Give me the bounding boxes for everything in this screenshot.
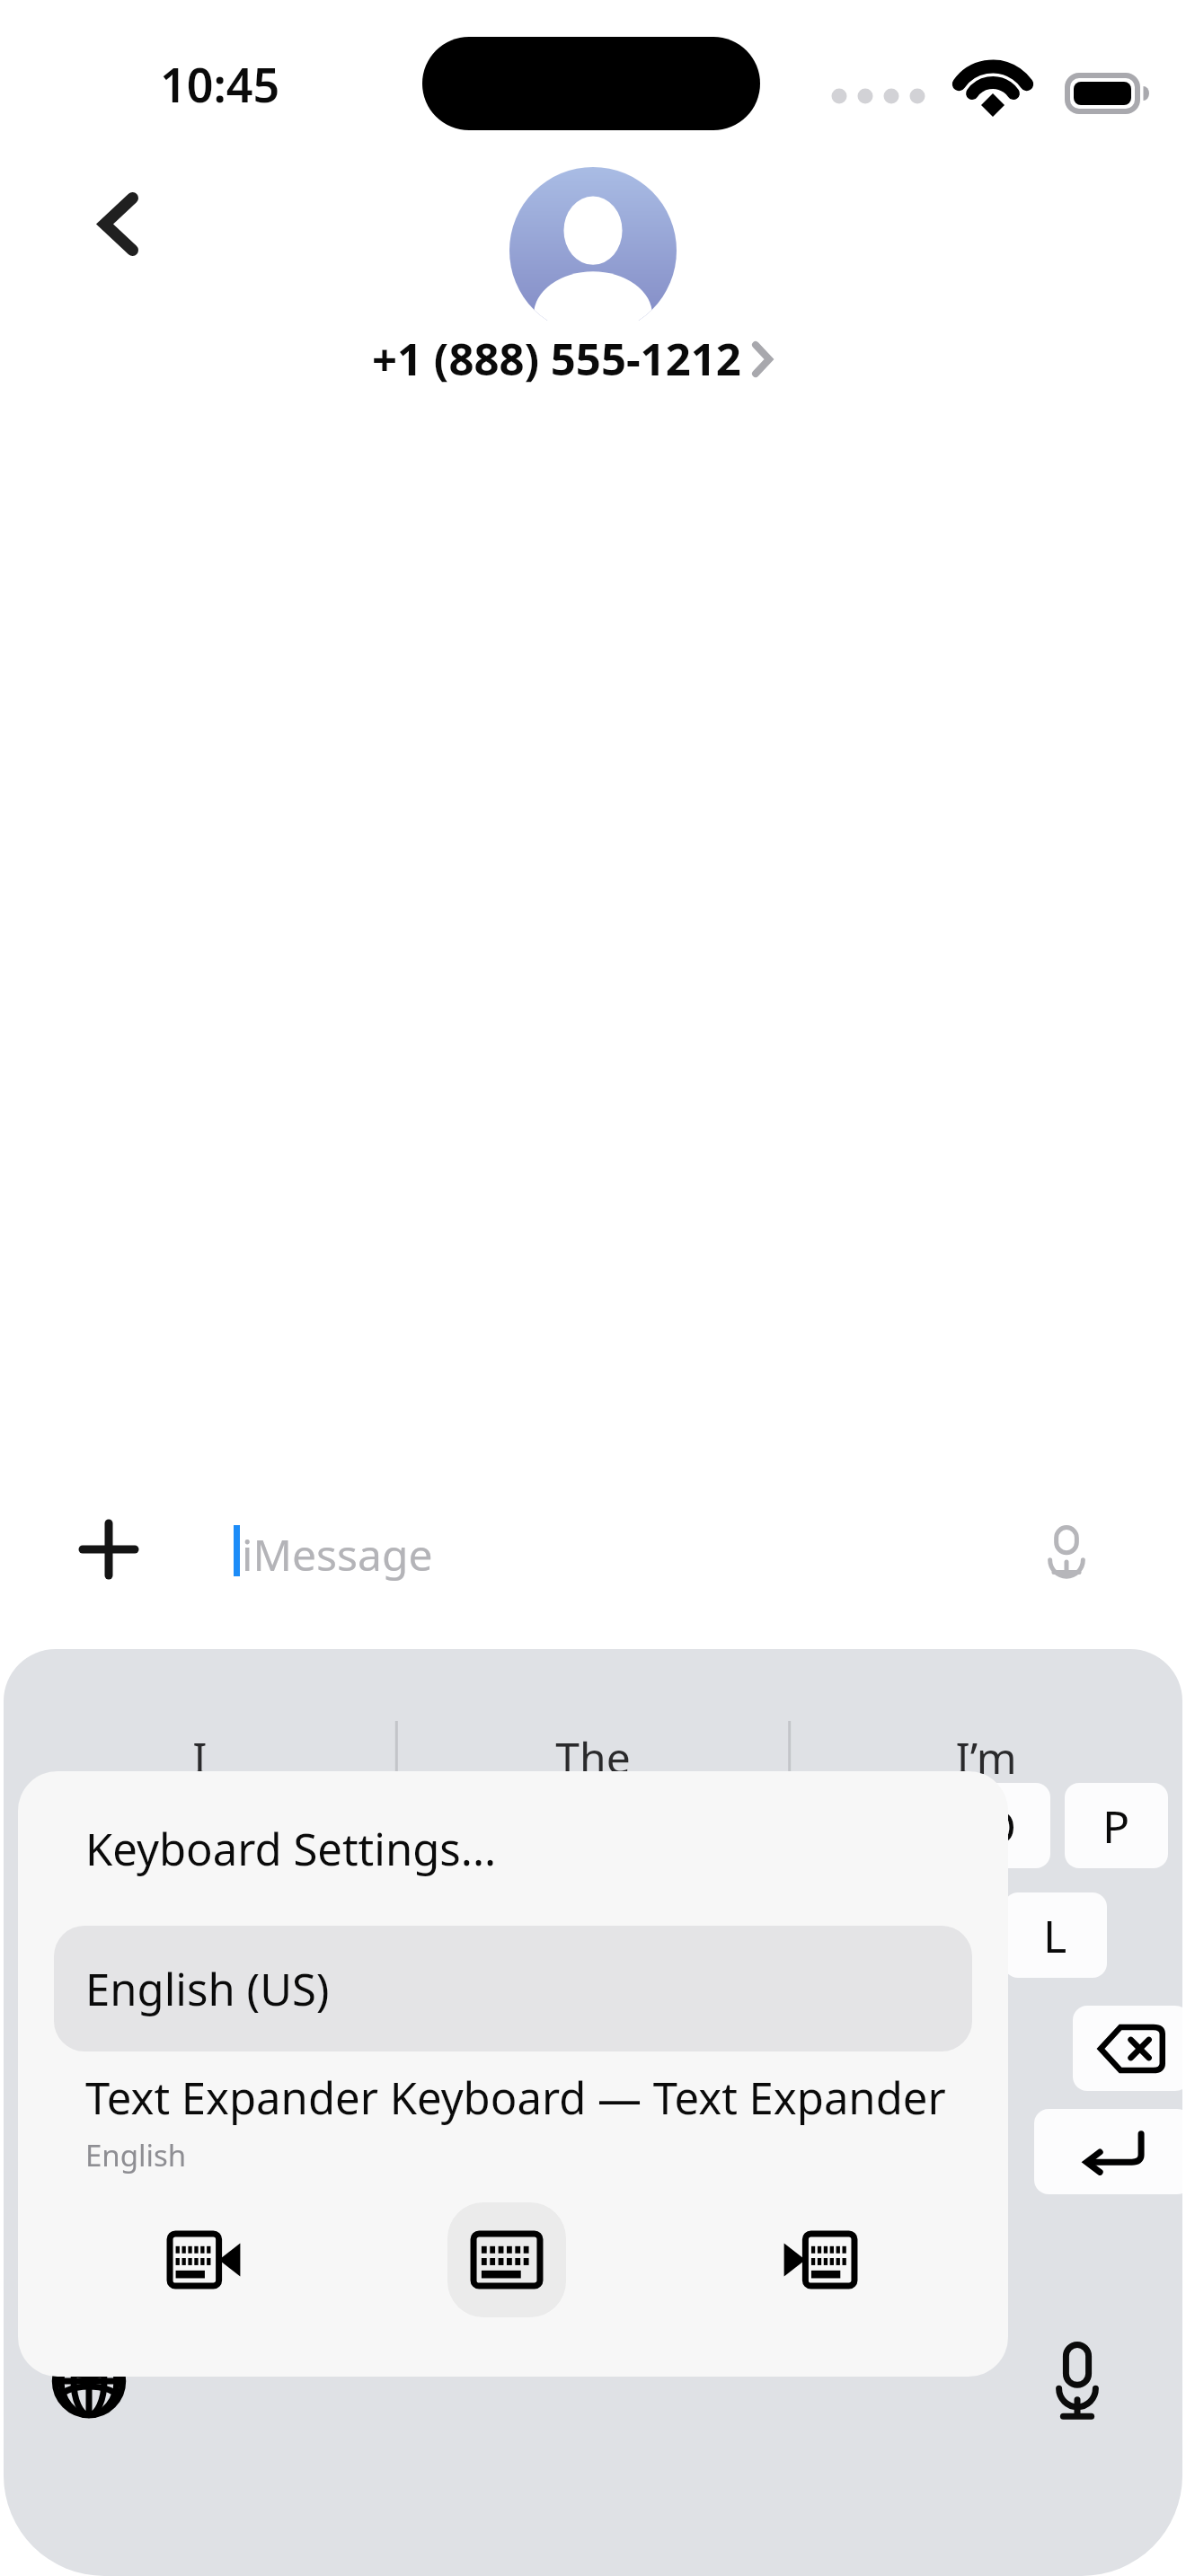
button[interactable]: Voice message: [1042, 1526, 1091, 1575]
button[interactable]: O: [947, 1783, 1050, 1868]
button[interactable]: P: [1065, 1783, 1168, 1868]
button[interactable]: I: [4, 1703, 396, 1811]
button[interactable]: Contact avatar: [509, 167, 677, 334]
staticText: P: [1102, 1795, 1130, 1857]
button[interactable]: +1 (888) 555-1212: [340, 321, 804, 396]
staticText: The: [555, 1728, 631, 1786]
button[interactable]: Back: [56, 164, 175, 284]
staticText: Text Expander Keyboard — Text Expander: [85, 2068, 946, 2128]
button[interactable]: Return: [1034, 2109, 1182, 2194]
button[interactable]: I’m: [790, 1703, 1182, 1811]
button[interactable]: Backspace: [1073, 2006, 1182, 2091]
staticText: iMessage: [242, 1525, 433, 1584]
button[interactable]: Text Expander Keyboard — Text Expander: [85, 2068, 1008, 2175]
button[interactable]: English (US): [54, 1926, 972, 2051]
button[interactable]: Dictation: [1028, 2332, 1127, 2430]
button[interactable]: Dock keyboard left: [144, 2202, 262, 2317]
button[interactable]: iMessage: [205, 1495, 1125, 1605]
staticText: English: [85, 2135, 187, 2175]
staticText: 10:45: [160, 52, 280, 116]
staticText: +1 (888) 555-1212: [372, 329, 741, 389]
button[interactable]: L: [1004, 1892, 1107, 1978]
staticText: I: [192, 1728, 208, 1786]
staticText: English (US): [85, 1959, 330, 2019]
button[interactable]: Keyboard Settings...: [18, 1791, 1008, 1906]
staticText: Keyboard Settings...: [85, 1819, 497, 1879]
button[interactable]: Dock keyboard: [447, 2202, 566, 2317]
button[interactable]: Dock keyboard right: [762, 2202, 881, 2317]
button[interactable]: Switch keyboard: [40, 2332, 138, 2430]
staticText: O: [981, 1795, 1017, 1857]
staticText: L: [1043, 1905, 1067, 1966]
button[interactable]: The: [396, 1703, 789, 1811]
staticText: I’m: [955, 1728, 1017, 1786]
button[interactable]: Add attachment: [54, 1495, 164, 1604]
